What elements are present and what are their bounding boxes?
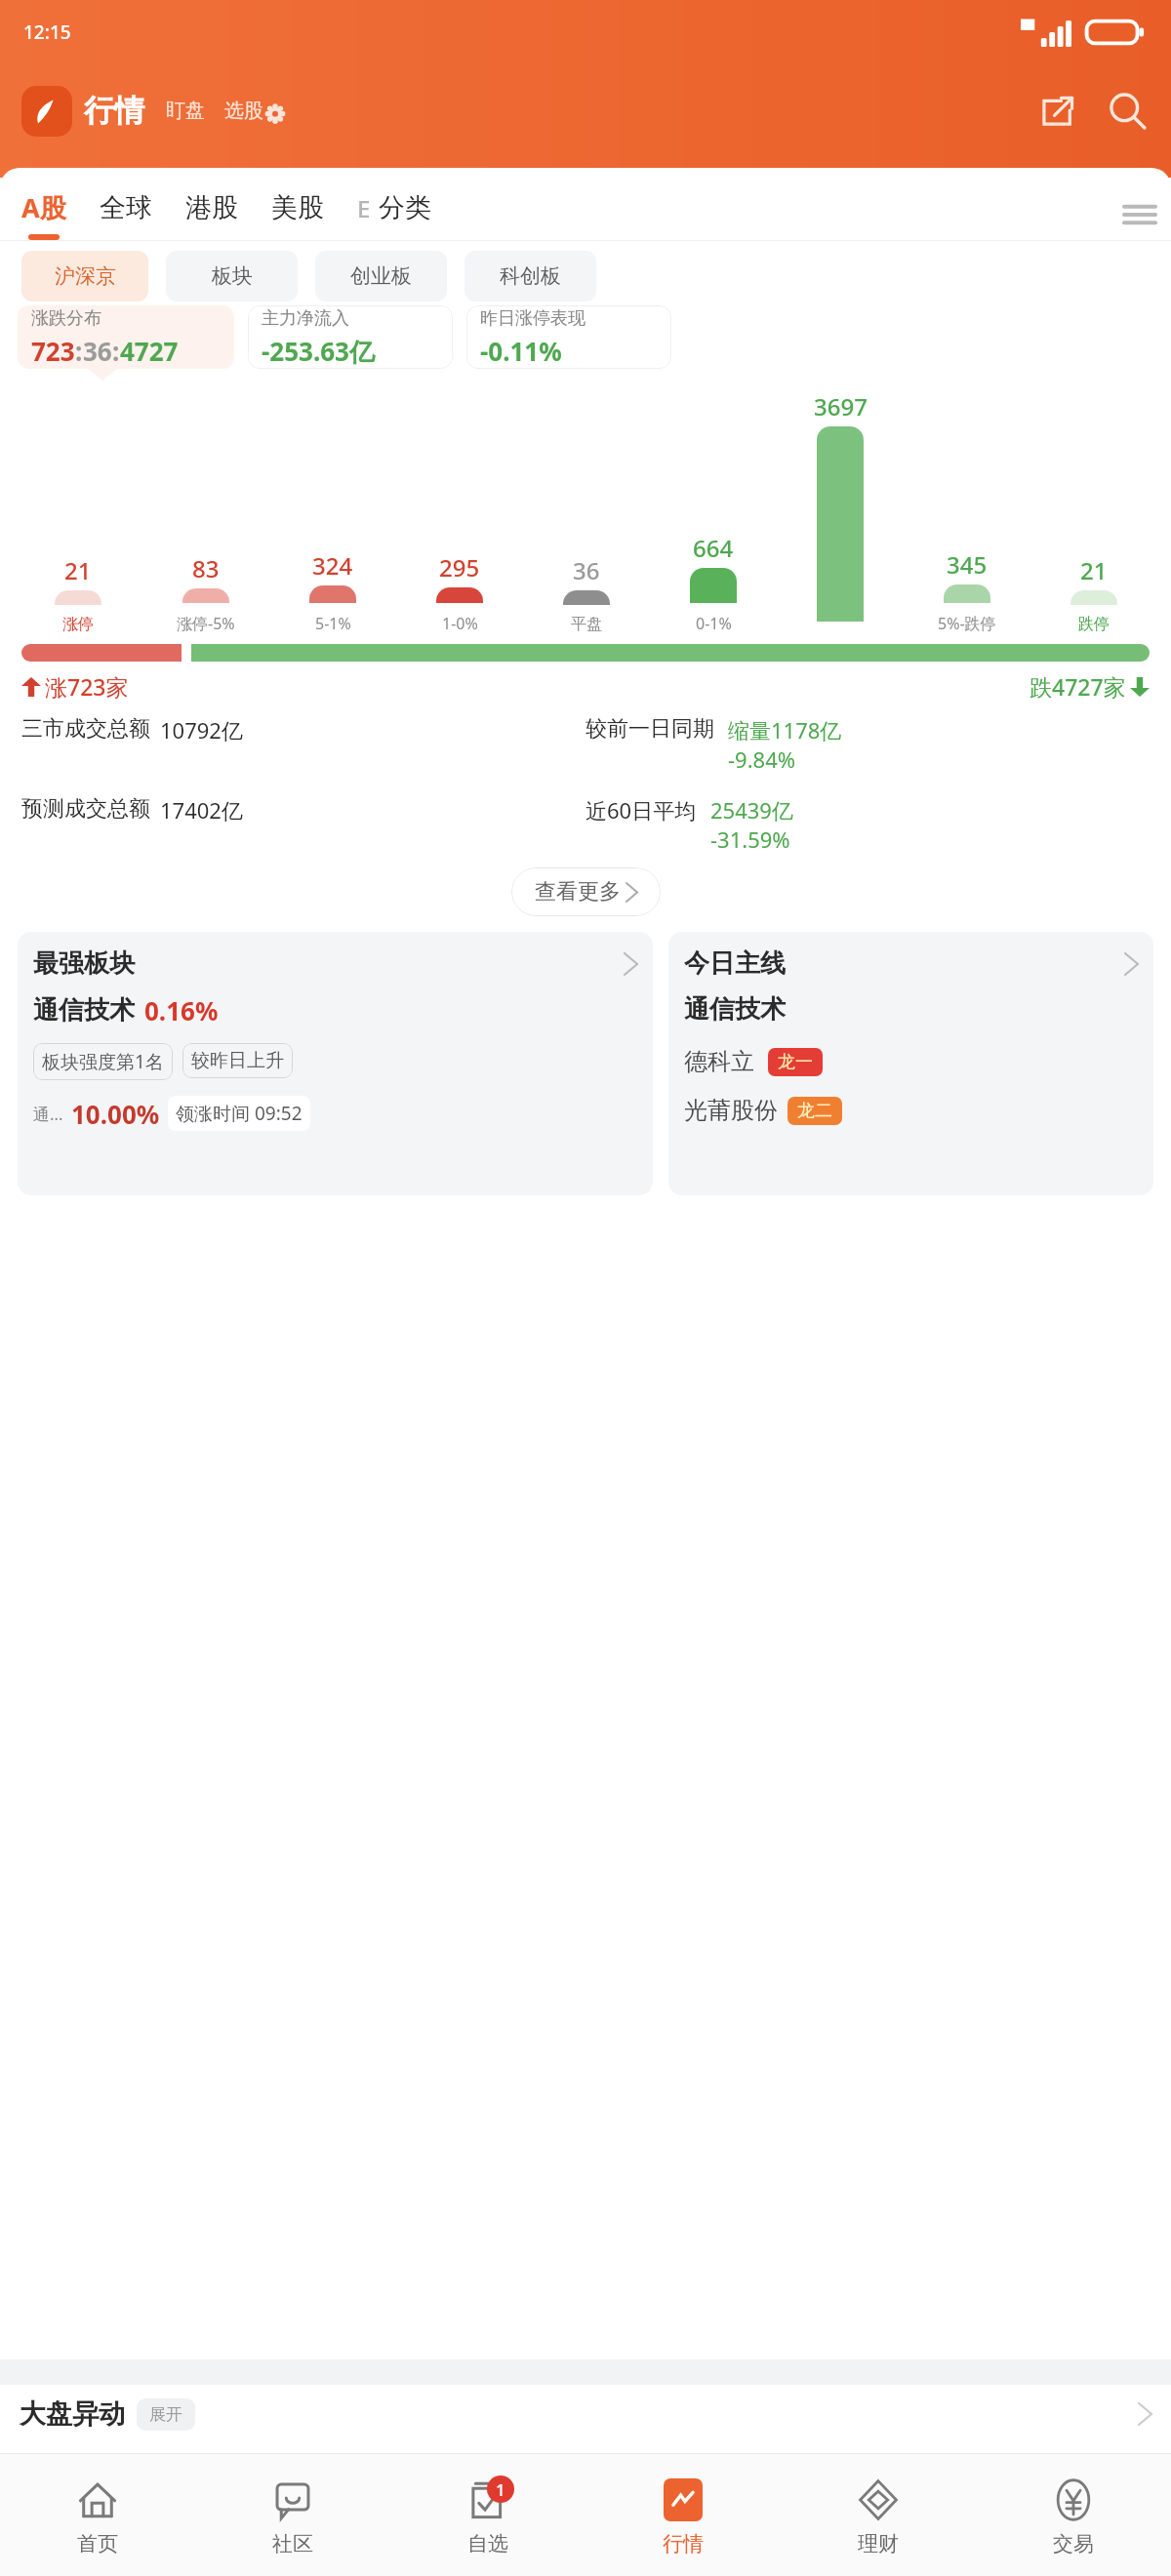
staticText: : xyxy=(112,334,120,368)
button[interactable]: 21 xyxy=(1030,554,1157,634)
staticText: 行情 xyxy=(84,92,144,130)
button[interactable]: 港股 xyxy=(185,191,238,239)
button[interactable]: 664 xyxy=(650,532,777,634)
staticText: 平盘 xyxy=(571,615,602,634)
staticText: 盯盘 xyxy=(166,99,205,123)
staticText: 295 xyxy=(439,551,480,584)
staticText: 美股 xyxy=(271,191,324,224)
staticText: 涨停 xyxy=(62,615,94,634)
button[interactable]: 美股 xyxy=(271,191,324,239)
button[interactable]: App logo xyxy=(21,86,72,137)
staticText: 10.00% xyxy=(71,1097,160,1131)
staticText: 跌4727家 xyxy=(1030,671,1126,702)
staticText: 1 xyxy=(496,2478,505,2501)
button[interactable]: Home xyxy=(0,2454,195,2576)
button[interactable]: 大盘异动 xyxy=(0,2385,1171,2443)
button[interactable]: 295 xyxy=(396,551,523,634)
staticText: 324 xyxy=(312,549,353,582)
other: Watchlist xyxy=(467,2479,508,2520)
staticText: 涨停-5% xyxy=(177,613,235,634)
staticText: 德科立 xyxy=(684,1047,754,1076)
button[interactable]: 查看更多 xyxy=(511,867,661,916)
button[interactable]: 昨日涨停表现 xyxy=(466,305,671,369)
button[interactable]: 324 xyxy=(269,549,396,634)
button[interactable]: 涨跌分布 xyxy=(18,305,234,369)
staticText: 1-0% xyxy=(442,613,478,634)
button[interactable]: 板块 xyxy=(166,251,298,302)
button[interactable]: 科创板 xyxy=(464,251,596,302)
staticText: 自选 xyxy=(467,2531,508,2556)
staticText: 光莆股份 xyxy=(684,1096,778,1125)
staticText: E xyxy=(357,192,371,224)
button[interactable]: 盯盘 xyxy=(162,95,209,127)
staticText: 36 xyxy=(83,334,112,368)
button[interactable]: 沪深京 xyxy=(21,251,148,302)
staticText: 领涨时间 09:52 xyxy=(176,1101,303,1126)
button[interactable]: 最强板块 xyxy=(18,932,653,1195)
button[interactable]: 主力净流入 xyxy=(248,305,453,369)
staticText: 三市成交总额 xyxy=(21,715,150,743)
staticText: 较前一日同期 xyxy=(585,715,714,743)
staticText: 12:15 xyxy=(23,20,71,45)
staticText: 龙一 xyxy=(778,1051,813,1073)
staticText: 通信技术 xyxy=(684,993,786,1026)
staticText: -9.84% xyxy=(728,745,796,774)
button[interactable]: Market xyxy=(585,2454,781,2576)
staticText: A股 xyxy=(21,189,66,225)
staticText: 3697 xyxy=(814,390,868,423)
staticText: 社区 xyxy=(272,2531,313,2556)
staticText: 0-1% xyxy=(696,613,732,634)
staticText: 理财 xyxy=(858,2531,899,2556)
staticText: 板块强度第1名 xyxy=(42,1049,164,1074)
staticText: 板块 xyxy=(212,263,253,289)
button[interactable]: 345 xyxy=(904,548,1030,634)
button[interactable]: 创业板 xyxy=(315,251,447,302)
staticText: -0.11% xyxy=(480,334,562,368)
button[interactable]: Watchlist xyxy=(390,2454,585,2576)
staticText: 展开 xyxy=(149,2404,182,2425)
button[interactable]: 36 xyxy=(523,554,650,634)
staticText: 83 xyxy=(192,552,220,584)
staticText: -253.63亿 xyxy=(262,334,375,369)
staticText: 25439亿 xyxy=(710,795,793,825)
staticText: 最强板块 xyxy=(33,947,135,980)
button[interactable]: 3697 xyxy=(777,390,904,634)
other: Finance xyxy=(857,2478,900,2521)
staticText: 10792亿 xyxy=(160,715,243,745)
staticText: 36 xyxy=(573,554,600,586)
staticText: 涨跌分布 xyxy=(31,307,101,330)
other: Trade xyxy=(1052,2478,1095,2521)
staticText: 21 xyxy=(1080,554,1108,586)
other: Settings xyxy=(264,101,286,122)
staticText: 大盘异动 xyxy=(20,2397,125,2431)
staticText: -31.59% xyxy=(710,825,790,854)
staticText: 664 xyxy=(693,532,734,564)
staticText: 首页 xyxy=(77,2531,118,2556)
button[interactable]: A股 xyxy=(21,189,66,240)
staticText: 全球 xyxy=(100,191,152,224)
button[interactable]: Community xyxy=(195,2454,390,2576)
staticText: 创业板 xyxy=(350,263,412,289)
staticText: 行情 xyxy=(663,2531,704,2556)
button[interactable]: 选股 xyxy=(221,95,290,127)
button[interactable]: 21 xyxy=(14,554,141,634)
staticText: 预测成交总额 xyxy=(21,795,150,823)
staticText: 跌停 xyxy=(1078,615,1110,634)
button[interactable]: 今日主线 xyxy=(668,932,1153,1195)
button[interactable]: Search xyxy=(1105,89,1150,134)
other: Home xyxy=(77,2479,118,2520)
button[interactable]: 全球 xyxy=(100,191,152,239)
button[interactable]: E xyxy=(357,191,431,239)
staticText: 涨723家 xyxy=(45,671,129,702)
button[interactable]: Share xyxy=(1036,90,1079,133)
staticText: 昨日涨停表现 xyxy=(480,307,585,330)
button[interactable]: Trade xyxy=(976,2454,1171,2576)
button[interactable]: Menu xyxy=(1124,199,1155,230)
staticText: 较昨日上升 xyxy=(191,1049,284,1072)
button[interactable]: 83 xyxy=(141,552,269,634)
staticText: 交易 xyxy=(1053,2531,1094,2556)
button[interactable]: Finance xyxy=(781,2454,976,2576)
staticText: 主力净流入 xyxy=(262,307,349,330)
other: Market xyxy=(664,2478,703,2521)
